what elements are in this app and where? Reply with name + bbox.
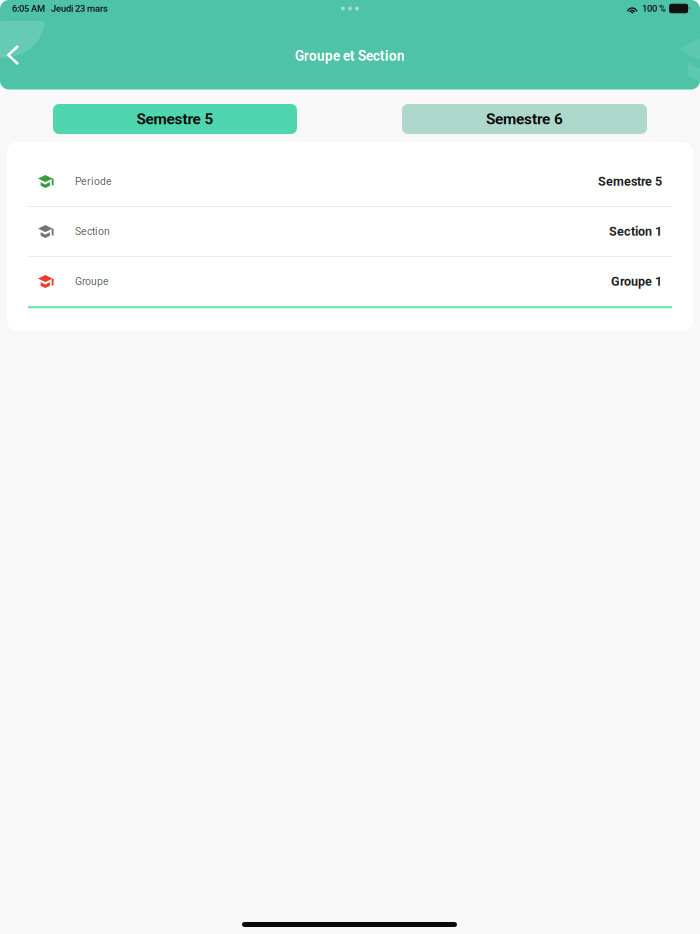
button[interactable]: Semestre 5 (53, 104, 297, 134)
staticText: Semestre 6 (486, 110, 563, 128)
staticText: Semestre 5 (598, 174, 662, 189)
staticText: Groupe et Section (295, 48, 405, 64)
button[interactable]: Periode (7, 157, 693, 206)
staticText: Jeudi 23 mars (45, 3, 108, 14)
staticText: Groupe (75, 275, 109, 288)
staticText: Periode (75, 175, 112, 188)
staticText: Semestre 5 (136, 110, 213, 128)
button[interactable]: Back (0, 33, 33, 77)
staticText: Groupe 1 (611, 274, 662, 289)
button[interactable]: Groupe (7, 257, 693, 306)
staticText: Section 1 (609, 224, 662, 239)
button[interactable]: Semestre 6 (402, 104, 647, 134)
staticText: 100 % (642, 3, 666, 14)
staticText: 6:05 AM (12, 3, 45, 14)
staticText: Section (75, 225, 110, 238)
button[interactable]: Section (7, 207, 693, 256)
